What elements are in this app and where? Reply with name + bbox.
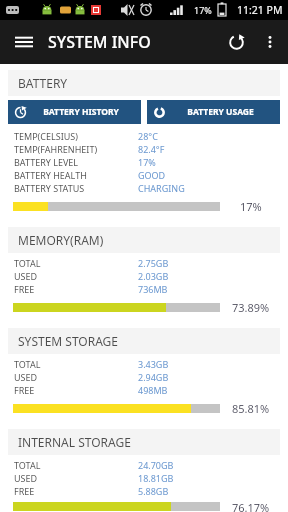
staticText: 17% <box>194 4 212 16</box>
staticText: USED <box>14 472 38 484</box>
staticText: 73.89% <box>232 300 270 315</box>
staticText: TOTAL <box>14 358 41 370</box>
staticText: 2.03GB <box>138 270 169 282</box>
button[interactable]: Refresh <box>218 24 254 60</box>
button[interactable]: BATTERY USAGE <box>147 100 280 124</box>
staticText: 11:21 PM <box>237 3 283 17</box>
staticText: FREE <box>14 485 35 497</box>
staticText: 18.81GB <box>138 472 174 484</box>
staticText: SYSTEM STORAGE <box>18 333 119 349</box>
staticText: 498MB <box>138 384 168 396</box>
staticText: BATTERY HISTORY <box>43 106 119 118</box>
staticText: BATTERY LEVEL <box>14 156 79 168</box>
button[interactable]: Open navigation menu <box>8 26 40 58</box>
staticText: 17% <box>138 156 156 168</box>
button[interactable]: More options <box>254 26 286 58</box>
staticText: 76.17% <box>232 500 270 512</box>
staticText: MEMORY(RAM) <box>18 232 104 248</box>
staticText: 17% <box>240 199 262 214</box>
staticText: 736MB <box>138 283 168 295</box>
staticText: FREE <box>14 384 35 396</box>
staticText: TEMP(CELSIUS) <box>14 130 78 142</box>
staticText: BATTERY <box>18 75 68 91</box>
staticText: TOTAL <box>14 459 41 471</box>
staticText: 5.88GB <box>138 485 169 497</box>
staticText: 28°C <box>138 130 158 142</box>
staticText: SYSTEM INFO <box>48 31 151 53</box>
staticText: 3.43GB <box>138 358 169 370</box>
staticText: USED <box>14 270 38 282</box>
staticText: BATTERY STATUS <box>14 182 85 194</box>
staticText: FREE <box>14 283 35 295</box>
staticText: GOOD <box>138 169 166 181</box>
staticText: 2.94GB <box>138 371 169 383</box>
staticText: CHARGING <box>138 182 185 194</box>
staticText: TOTAL <box>14 257 41 269</box>
button[interactable]: BATTERY HISTORY <box>8 100 141 124</box>
staticText: 24.70GB <box>138 459 174 471</box>
staticText: BATTERY HEALTH <box>14 169 87 181</box>
staticText: 85.81% <box>232 401 270 416</box>
staticText: USED <box>14 371 38 383</box>
staticText: 2.75GB <box>138 257 169 269</box>
staticText: 82.4°F <box>138 143 165 155</box>
staticText: INTERNAL STORAGE <box>18 434 131 450</box>
staticText: BATTERY USAGE <box>187 106 254 118</box>
staticText: TEMP(FAHRENHEIT) <box>14 143 98 155</box>
